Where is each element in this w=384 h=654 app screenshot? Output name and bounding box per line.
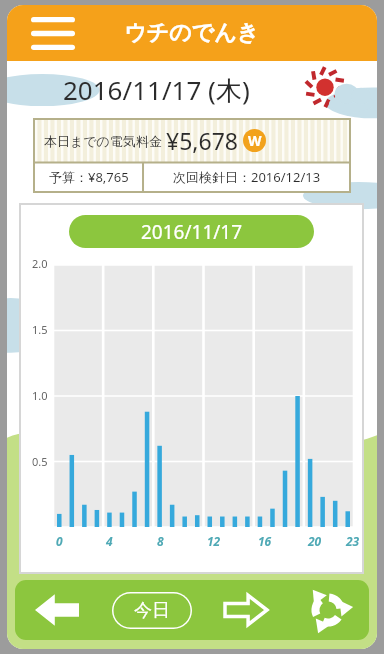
staticText: 8 (157, 533, 164, 549)
staticText: 12 (207, 533, 221, 549)
staticText: 0 (56, 533, 63, 549)
staticText: 2016/11/17 (木) (63, 72, 250, 108)
staticText: 0.5 (32, 454, 48, 469)
staticText: 4 (106, 533, 113, 549)
staticText: ¥5,678 (166, 125, 238, 156)
button[interactable]: Next day (205, 580, 287, 640)
button[interactable]: Previous day (15, 580, 98, 640)
staticText: 次回検針日：2016/12/13 (173, 168, 321, 186)
staticText: 今日 (134, 599, 170, 622)
staticText: W (248, 131, 262, 150)
button[interactable]: Menu (27, 11, 79, 55)
button[interactable]: Refresh (287, 580, 369, 640)
button[interactable]: 2016/11/17 (69, 215, 314, 248)
staticText: 1.0 (32, 388, 48, 403)
staticText: ウチのでんき (124, 19, 260, 47)
button[interactable]: 本日までの電気料金 (34, 119, 350, 192)
staticText: 16 (258, 533, 272, 549)
button[interactable]: 今日 (112, 592, 192, 629)
staticText: 本日までの電気料金 (44, 133, 162, 149)
staticText: 2016/11/17 (141, 219, 243, 245)
staticText: 予算：¥8,765 (49, 168, 129, 186)
staticText: 1.5 (32, 322, 48, 337)
staticText: 2.0 (32, 256, 48, 271)
staticText: 23 (346, 533, 360, 549)
staticText: 20 (308, 533, 322, 549)
